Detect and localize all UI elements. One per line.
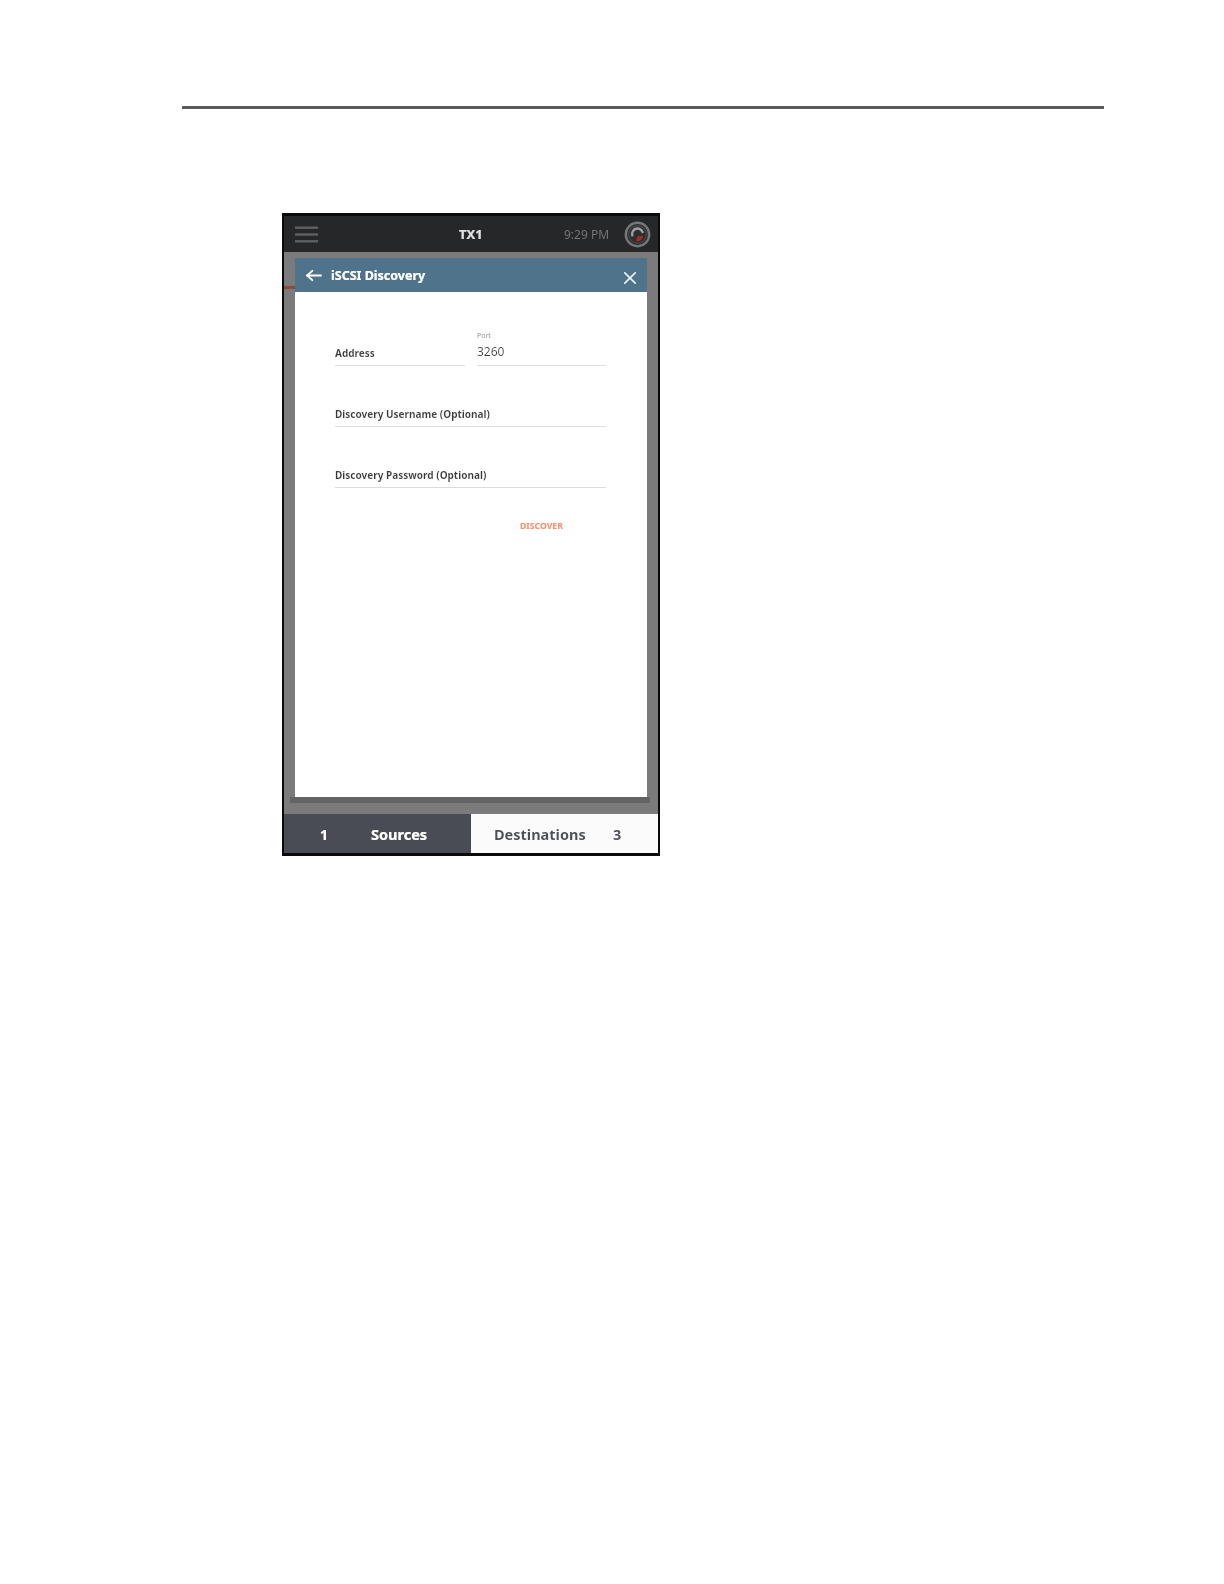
staticText: Address	[335, 346, 375, 360]
button[interactable]: Close	[615, 263, 645, 293]
staticText: iSCSI Discovery	[331, 267, 426, 284]
staticText: Destinations	[494, 824, 586, 844]
staticText: Sources	[371, 824, 428, 844]
staticText: 1	[320, 824, 329, 844]
staticText: Discovery Username (Optional)	[335, 407, 490, 421]
button[interactable]: 1	[284, 814, 471, 853]
staticText: 9:29 PM	[564, 226, 610, 242]
button[interactable]: Account	[621, 218, 653, 250]
staticText: Port	[477, 331, 491, 341]
button[interactable]: Back	[301, 263, 325, 287]
staticText: Discovery Password (Optional)	[335, 468, 487, 482]
button[interactable]: Port	[477, 331, 606, 366]
staticText: 3	[613, 824, 622, 844]
button[interactable]: Menu	[291, 219, 321, 249]
button[interactable]: Discovery Password (Optional)	[335, 468, 606, 488]
button[interactable]: Discovery Username (Optional)	[335, 407, 606, 427]
button[interactable]: DISCOVER	[508, 512, 575, 540]
button[interactable]: Destinations	[471, 814, 658, 853]
staticText: DISCOVER	[520, 520, 563, 532]
staticText: 3260	[477, 343, 505, 359]
button[interactable]: Address	[335, 346, 465, 366]
staticText: TX1	[459, 225, 483, 243]
